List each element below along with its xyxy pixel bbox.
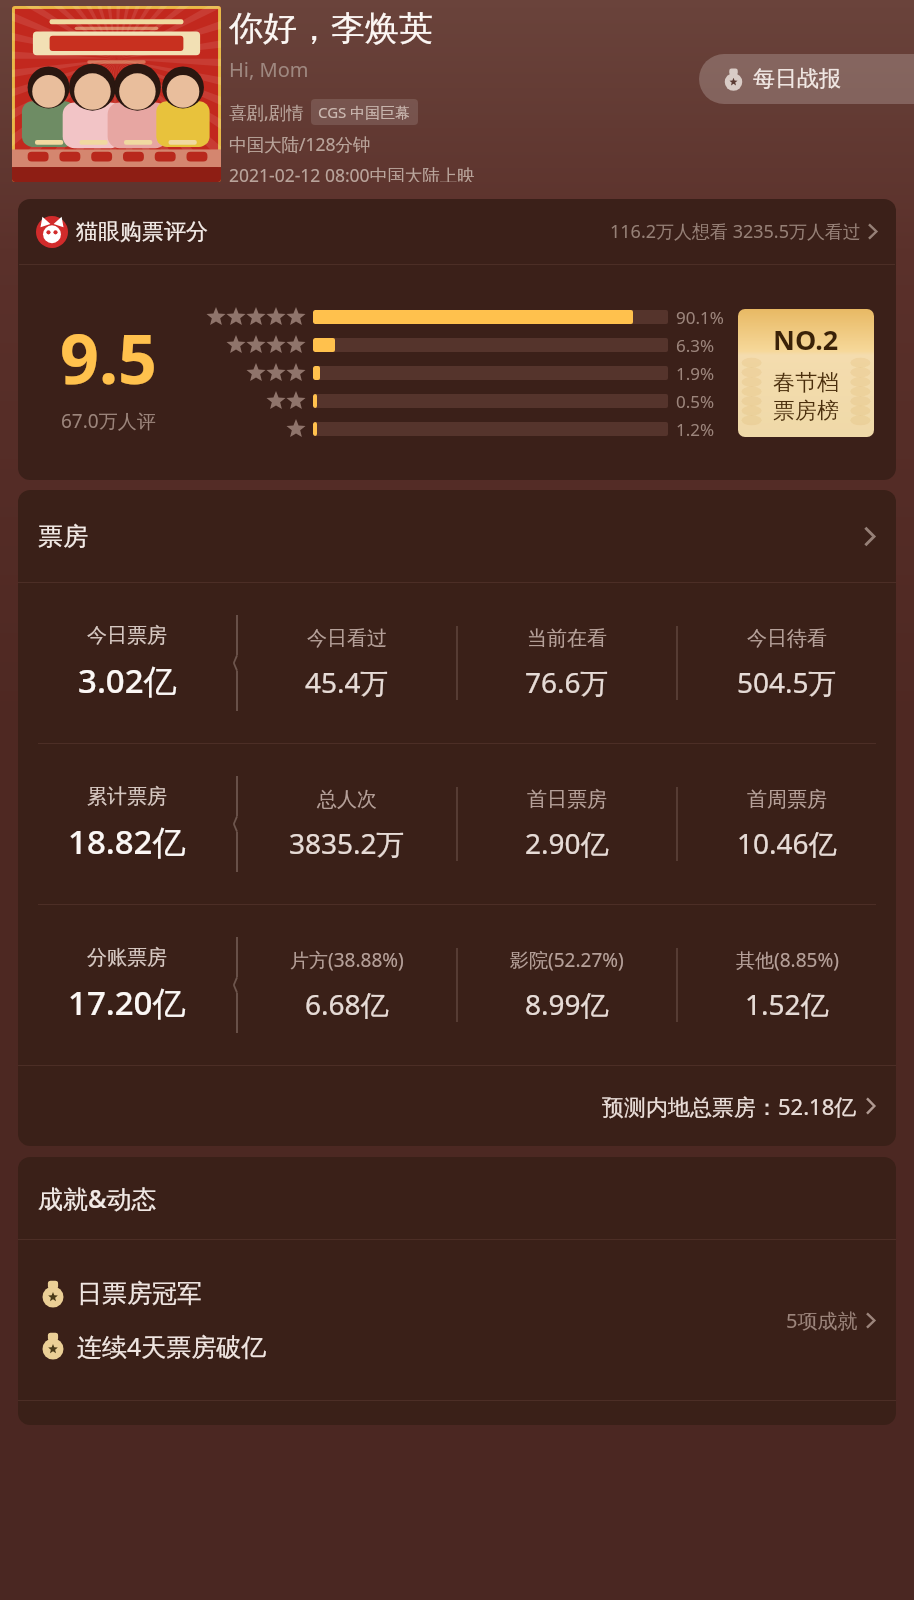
staticText: 每日战报 <box>753 65 841 93</box>
staticText: 8.99亿 <box>525 985 609 1023</box>
button[interactable]: 票房 <box>18 490 896 582</box>
staticText: 116.2万人想看 3235.5万人看过 <box>610 219 861 244</box>
staticText: 首周票房 <box>747 787 827 812</box>
staticText: 17.20亿 <box>68 980 186 1025</box>
staticText: 其他(8.85%) <box>736 947 839 973</box>
staticText: 今日票房 <box>87 623 167 648</box>
staticText: 日票房冠军 <box>77 1278 202 1309</box>
staticText: 3835.2万 <box>289 824 405 862</box>
staticText: 预测内地总票房：52.18亿 <box>602 1091 857 1121</box>
staticText: 分账票房 <box>87 945 167 970</box>
staticText: 18.82亿 <box>68 819 186 864</box>
button[interactable]: NO.2 <box>738 309 874 437</box>
staticText: 1.52亿 <box>745 985 829 1023</box>
staticText: 成就&动态 <box>38 1181 157 1215</box>
staticText: 当前在看 <box>527 626 607 651</box>
staticText: 3.02亿 <box>78 658 177 703</box>
staticText: 喜剧,剧情 <box>229 100 304 124</box>
staticText: 首日票房 <box>527 787 607 812</box>
staticText: 中国大陆/128分钟 <box>229 132 371 156</box>
button[interactable]: 预测内地总票房：52.18亿 <box>18 1066 896 1146</box>
staticText: 今日待看 <box>747 626 827 651</box>
staticText: 1.2% <box>676 418 734 441</box>
staticText: 67.0万人评 <box>61 408 156 434</box>
staticText: 2.90亿 <box>525 824 609 862</box>
staticText: 45.4万 <box>305 663 389 701</box>
staticText: 总人次 <box>317 787 377 812</box>
staticText: 90.1% <box>676 306 734 329</box>
staticText: 6.68亿 <box>305 985 389 1023</box>
staticText: 10.46亿 <box>737 824 837 862</box>
staticText: 0.5% <box>676 390 734 413</box>
staticText: 今日看过 <box>307 626 387 651</box>
staticText: 票房榜 <box>773 397 839 425</box>
staticText: 连续4天票房破亿 <box>77 1329 267 1363</box>
button[interactable]: 猫眼购票评分 <box>18 199 896 264</box>
staticText: 6.3% <box>676 334 734 357</box>
button[interactable]: 每日战报 <box>699 54 914 104</box>
staticText: 76.6万 <box>525 663 609 701</box>
staticText: CGS 中国巨幕 <box>318 102 411 122</box>
staticText: 猫眼购票评分 <box>76 218 208 246</box>
staticText: 你好，李焕英 <box>229 7 433 50</box>
button[interactable]: 日票房冠军 <box>18 1240 896 1400</box>
staticText: 春节档 <box>773 369 839 397</box>
staticText: 票房 <box>38 521 88 552</box>
staticText: Hi, Mom <box>229 56 309 83</box>
staticText: 影院(52.27%) <box>510 947 624 973</box>
staticText: 9.5 <box>60 311 157 404</box>
button[interactable] <box>12 6 221 182</box>
staticText: NO.2 <box>773 321 839 358</box>
staticText: 1.9% <box>676 362 734 385</box>
staticText: 2021-02-12 08:00中国大陆上映 <box>229 163 475 182</box>
staticText: 累计票房 <box>87 784 167 809</box>
staticText: 504.5万 <box>737 663 837 701</box>
staticText: 5项成就 <box>786 1307 858 1334</box>
staticText: 片方(38.88%) <box>290 947 404 973</box>
